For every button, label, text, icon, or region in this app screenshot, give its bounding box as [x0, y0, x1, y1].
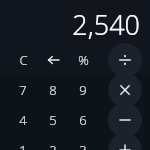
button[interactable]: Divide — [108, 43, 142, 77]
button[interactable]: 2 — [36, 135, 70, 150]
button[interactable]: C — [6, 45, 40, 75]
staticText: 2,540 — [72, 6, 140, 42]
staticText: 8 — [49, 81, 57, 99]
button[interactable]: 1 — [6, 135, 40, 150]
button[interactable]: Add — [108, 133, 142, 150]
staticText: 6 — [79, 111, 87, 129]
button[interactable]: 3 — [66, 135, 100, 150]
staticText: 1 — [19, 141, 27, 150]
staticText: C — [19, 51, 28, 69]
button[interactable]: 6 — [66, 105, 100, 135]
staticText: 5 — [49, 111, 57, 129]
button[interactable]: 2,540 — [0, 0, 150, 42]
button[interactable]: 5 — [36, 105, 70, 135]
button[interactable]: % — [66, 45, 100, 75]
button[interactable]: 4 — [6, 105, 40, 135]
button[interactable]: Subtract — [108, 103, 142, 137]
button[interactable]: 7 — [6, 75, 40, 105]
staticText: 4 — [19, 111, 27, 129]
button[interactable]: 9 — [66, 75, 100, 105]
button[interactable]: 8 — [36, 75, 70, 105]
button[interactable]: Backspace — [36, 45, 70, 75]
staticText: % — [78, 51, 89, 69]
staticText: 9 — [79, 81, 87, 99]
staticText: 2 — [49, 141, 57, 150]
staticText: 7 — [19, 81, 27, 99]
staticText: 3 — [79, 141, 87, 150]
button[interactable]: Multiply — [108, 73, 142, 107]
